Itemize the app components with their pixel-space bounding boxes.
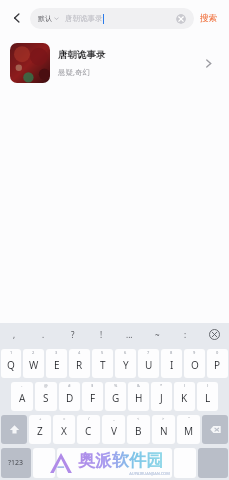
staticText: % xyxy=(114,383,118,388)
staticText: > xyxy=(162,416,165,421)
button[interactable]: Space xyxy=(57,448,172,478)
button[interactable]: Open xyxy=(197,52,219,74)
button[interactable]: / xyxy=(77,415,100,444)
staticText: 搜索 xyxy=(200,13,217,24)
staticText: 7 xyxy=(147,350,150,355)
button[interactable]: < xyxy=(127,415,150,444)
staticText: * xyxy=(160,383,163,388)
button[interactable]: $ xyxy=(82,382,103,411)
staticText: 5 xyxy=(101,350,104,355)
staticText: H xyxy=(135,391,143,405)
button[interactable]: ! xyxy=(87,323,115,345)
staticText: D xyxy=(66,391,74,405)
button[interactable]: 3 xyxy=(46,349,67,378)
staticText: ( xyxy=(184,383,186,388)
button[interactable]: + xyxy=(29,415,51,444)
staticText: 4 xyxy=(78,350,81,355)
staticText: I xyxy=(170,358,174,372)
staticText: " xyxy=(188,416,190,421)
staticText: F xyxy=(90,391,96,405)
button[interactable]: Enter xyxy=(198,448,228,478)
staticText: ? xyxy=(71,329,75,340)
button[interactable]: . xyxy=(29,323,58,345)
button[interactable]: Clear xyxy=(176,14,186,24)
button[interactable]: 8 xyxy=(161,349,182,378)
button[interactable]: Back xyxy=(6,7,28,29)
staticText: U xyxy=(145,358,153,372)
staticText: & xyxy=(137,383,140,388)
button[interactable]: - xyxy=(11,382,33,411)
button[interactable]: ( xyxy=(174,382,195,411)
button[interactable]: 1 xyxy=(1,349,21,378)
staticText: ! xyxy=(100,329,103,340)
button[interactable]: % xyxy=(105,382,126,411)
staticText: @ xyxy=(44,383,48,388)
button[interactable]: = xyxy=(53,415,75,444)
staticText: $ xyxy=(91,383,94,388)
staticText: S xyxy=(43,391,49,405)
button[interactable]: 6 xyxy=(115,349,136,378)
button[interactable]: 0 xyxy=(207,349,228,378)
staticText: Z xyxy=(37,424,43,438)
button[interactable]: ... xyxy=(115,323,143,345)
staticText: < xyxy=(137,416,140,421)
staticText: C xyxy=(85,424,92,438)
staticText: E xyxy=(54,358,60,372)
button[interactable]: 7 xyxy=(138,349,159,378)
button[interactable]: 唐朝诡事录 xyxy=(0,36,229,90)
staticText: B xyxy=(135,424,142,438)
staticText: P xyxy=(214,358,221,372)
staticText: _ xyxy=(113,416,115,421)
staticText: ?123 xyxy=(8,458,24,468)
staticText: 9 xyxy=(193,350,196,355)
staticText: K xyxy=(181,391,188,405)
button[interactable]: 2 xyxy=(23,349,44,378)
staticText: / xyxy=(88,416,90,421)
staticText: - xyxy=(21,383,23,388)
button[interactable]: Backspace xyxy=(202,415,228,444)
staticText: 2 xyxy=(32,350,35,355)
staticText: 默认 xyxy=(38,14,52,23)
button[interactable]: Delete xyxy=(199,323,229,345)
staticText: N xyxy=(160,424,168,438)
button[interactable]: : xyxy=(171,323,199,345)
staticText: 1 xyxy=(10,350,13,355)
staticText: 悬疑,奇幻 xyxy=(58,67,91,77)
staticText: + xyxy=(39,416,42,421)
button[interactable]: Emoji xyxy=(33,448,55,478)
staticText: A xyxy=(19,391,26,405)
button[interactable]: ~ xyxy=(143,323,171,345)
button[interactable]: 5 xyxy=(92,349,113,378)
staticText: 奥派软件园 xyxy=(78,450,163,471)
staticText: L xyxy=(205,391,211,405)
staticText: Q xyxy=(7,358,15,372)
staticText: Y xyxy=(123,358,129,372)
button[interactable]: @ xyxy=(35,382,57,411)
button[interactable]: 9 xyxy=(184,349,205,378)
button[interactable]: > xyxy=(152,415,175,444)
button[interactable]: 搜索 xyxy=(194,8,223,29)
button[interactable]: ?123 xyxy=(1,448,31,478)
staticText: , xyxy=(13,329,16,340)
staticText: = xyxy=(63,416,66,421)
button[interactable]: " xyxy=(177,415,200,444)
staticText: W xyxy=(29,358,39,372)
button[interactable]: _ xyxy=(102,415,125,444)
button[interactable]: & xyxy=(128,382,149,411)
staticText: M xyxy=(184,424,194,438)
button[interactable]: Shift xyxy=(1,415,27,444)
staticText: . xyxy=(42,329,45,340)
button[interactable]: , xyxy=(0,323,29,345)
staticText: R xyxy=(76,358,83,372)
button[interactable]: 默认 xyxy=(30,8,194,29)
staticText: 0 xyxy=(216,350,219,355)
button[interactable]: * xyxy=(151,382,172,411)
button[interactable]: ? xyxy=(58,323,87,345)
button[interactable]: # xyxy=(59,382,80,411)
staticText: O xyxy=(191,358,199,372)
button[interactable]: ) xyxy=(197,382,218,411)
staticText: G xyxy=(112,391,120,405)
button[interactable]: 4 xyxy=(69,349,90,378)
staticText: ~ xyxy=(155,329,160,340)
